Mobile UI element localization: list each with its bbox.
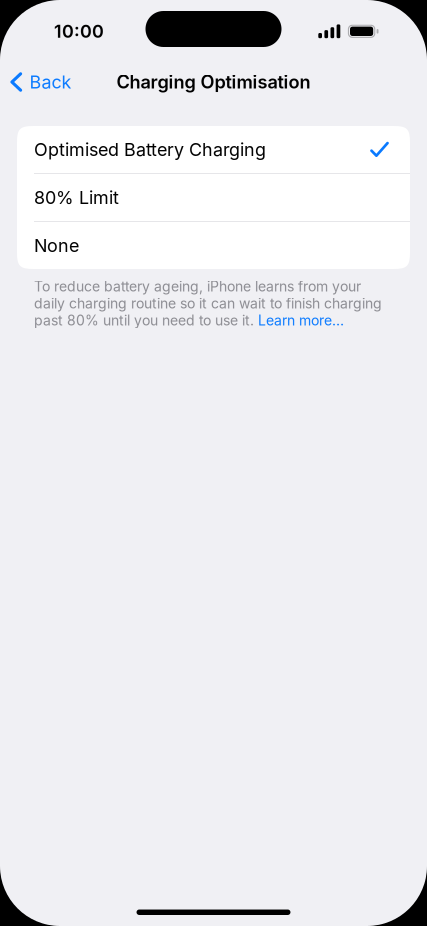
button[interactable]: 80% Limit <box>17 174 410 221</box>
button[interactable]: None <box>17 222 410 269</box>
staticText: Optimised Battery Charging <box>34 139 266 160</box>
staticText: 10:00 <box>54 20 104 42</box>
button[interactable]: Optimised Battery Charging <box>17 126 410 173</box>
staticText: Charging Optimisation <box>116 71 310 93</box>
button[interactable]: Back <box>0 64 81 100</box>
staticText: To reduce battery ageing, iPhone learns … <box>34 278 382 329</box>
staticText: 80% Limit <box>34 187 119 208</box>
staticText: Back <box>29 71 71 93</box>
staticText: None <box>34 235 79 256</box>
